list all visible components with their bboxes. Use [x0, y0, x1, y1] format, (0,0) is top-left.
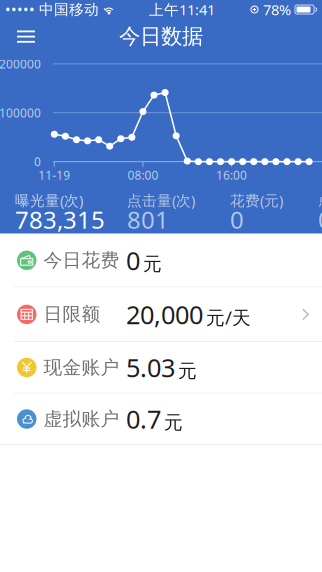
staticText: 上午11:41: [149, 0, 215, 19]
staticText: 元: [164, 411, 183, 434]
staticText: 11-19: [38, 167, 70, 183]
staticText: 花费(元): [230, 190, 283, 210]
staticText: 现金账户: [43, 356, 119, 379]
staticText: 点击量(次): [127, 190, 195, 210]
staticText: 78%: [263, 0, 291, 19]
button[interactable]: 今日花费: [0, 234, 322, 287]
staticText: 0: [34, 154, 41, 170]
button[interactable]: 现金账户: [0, 342, 322, 393]
staticText: 点击率: [318, 190, 322, 208]
staticText: 5.03: [126, 351, 175, 384]
button[interactable]: 虚拟账户: [0, 394, 322, 444]
staticText: 中国移动: [39, 0, 99, 18]
staticText: 0: [230, 203, 244, 235]
staticText: •••••: [5, 0, 35, 19]
staticText: 今日花费: [43, 249, 119, 272]
staticText: 0: [126, 243, 140, 277]
staticText: 日限额: [43, 303, 100, 326]
staticText: 20,000: [126, 298, 203, 331]
staticText: 0: [318, 203, 322, 235]
staticText: 801: [127, 203, 169, 235]
staticText: 100000: [0, 105, 41, 121]
staticText: 0.7: [126, 402, 161, 436]
staticText: 08:00: [127, 167, 158, 183]
button[interactable]: Menu: [0, 19, 47, 53]
staticText: 元: [143, 252, 162, 275]
staticText: 今日数据: [119, 23, 203, 50]
staticText: 200000: [0, 56, 41, 72]
staticText: 虚拟账户: [43, 407, 119, 430]
staticText: 曝光量(次): [15, 190, 83, 210]
staticText: 16:00: [216, 167, 247, 183]
staticText: 元/天: [206, 305, 251, 330]
staticText: 783,315: [15, 203, 105, 235]
staticText: 元: [178, 360, 197, 382]
button[interactable]: 日限额: [0, 287, 322, 341]
